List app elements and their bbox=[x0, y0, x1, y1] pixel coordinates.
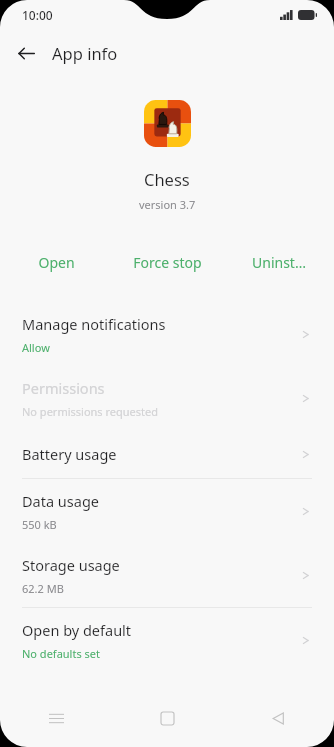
button[interactable]: Storage usage bbox=[0, 543, 334, 607]
staticText: Storage usage bbox=[22, 555, 120, 575]
staticText: Allow bbox=[22, 340, 50, 355]
staticText: version 3.7 bbox=[139, 197, 196, 212]
staticText: App info bbox=[52, 42, 118, 64]
button[interactable]: Open by default bbox=[0, 608, 334, 672]
staticText: Uninst… bbox=[252, 253, 306, 272]
staticText: Permissions bbox=[22, 378, 105, 398]
staticText: 550 kB bbox=[22, 517, 57, 532]
button[interactable]: Data usage bbox=[0, 479, 334, 543]
staticText: Battery usage bbox=[22, 444, 117, 464]
staticText: Open by default bbox=[22, 620, 132, 640]
button[interactable]: Manage notifications bbox=[0, 302, 334, 366]
staticText: Force stop bbox=[133, 253, 202, 272]
button[interactable]: Recent apps bbox=[0, 697, 112, 739]
button[interactable]: Back bbox=[223, 697, 334, 739]
button[interactable]: Back bbox=[11, 38, 41, 68]
button[interactable]: Battery usage bbox=[0, 430, 334, 478]
staticText: 10:00 bbox=[22, 7, 53, 23]
staticText: No defaults set bbox=[22, 646, 100, 661]
staticText: No permissions requested bbox=[22, 404, 158, 419]
button[interactable]: Force stop bbox=[112, 244, 223, 280]
button[interactable]: Open bbox=[0, 244, 112, 280]
staticText: Data usage bbox=[22, 491, 99, 511]
button[interactable]: Permissions bbox=[0, 366, 334, 430]
staticText: Manage notifications bbox=[22, 314, 166, 334]
button[interactable]: Home bbox=[112, 697, 223, 739]
button[interactable]: Uninst… bbox=[223, 244, 334, 280]
staticText: Open bbox=[38, 253, 75, 272]
staticText: Chess bbox=[144, 168, 190, 190]
staticText: 62.2 MB bbox=[22, 581, 64, 596]
